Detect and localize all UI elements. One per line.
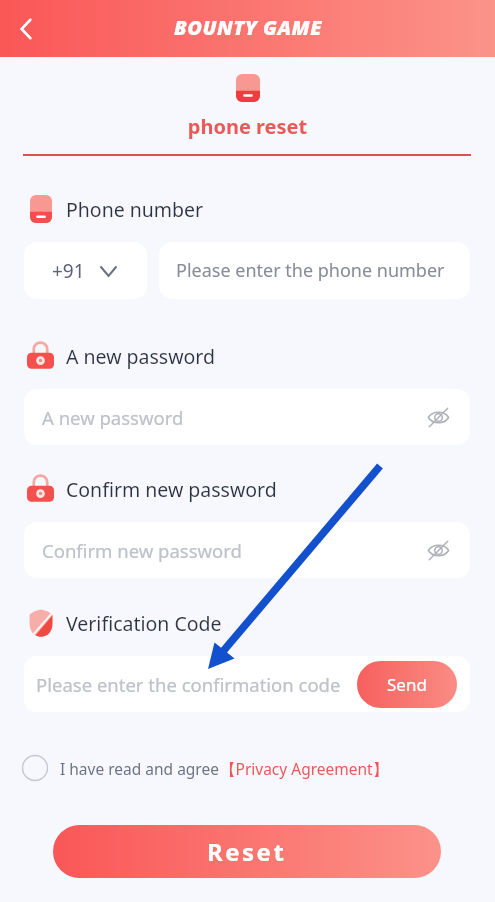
button[interactable]: I have read and agree	[21, 753, 389, 783]
staticText: Please enter the confirmation code	[36, 672, 341, 697]
staticText: Please enter the phone number	[176, 258, 445, 283]
button[interactable]: 【Privacy Agreement】	[220, 758, 389, 779]
button[interactable]: Show password	[423, 402, 453, 432]
staticText: BOUNTY GAME	[174, 14, 322, 41]
staticText: +91	[52, 258, 85, 284]
staticText: Phone number	[66, 196, 204, 223]
staticText: Confirm new password	[66, 476, 277, 503]
staticText: Verification Code	[66, 610, 222, 637]
staticText: Reset	[207, 835, 287, 868]
button[interactable]: +91	[24, 242, 147, 299]
button[interactable]: Please enter the phone number	[159, 242, 470, 299]
button[interactable]: Confirm new password	[24, 522, 470, 578]
staticText: A new password	[66, 343, 215, 370]
staticText: Confirm new password	[42, 538, 242, 563]
staticText: phone reset	[0, 113, 495, 140]
staticText: I have read and agree	[60, 758, 219, 779]
button[interactable]: Reset	[53, 825, 441, 878]
button[interactable]: A new password	[24, 389, 470, 445]
button[interactable]: Send	[357, 661, 457, 708]
staticText: Send	[387, 673, 427, 696]
staticText: A new password	[42, 405, 184, 430]
button[interactable]: Show password	[423, 535, 453, 565]
button[interactable]: Back	[6, 9, 46, 49]
